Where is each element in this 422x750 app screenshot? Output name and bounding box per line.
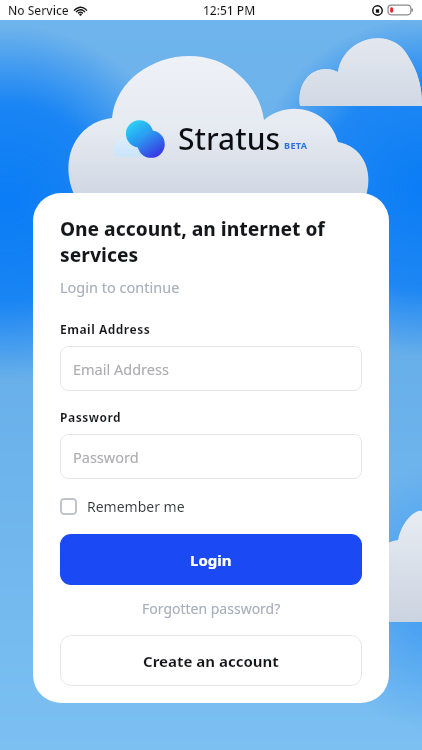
staticText: Password: [60, 409, 122, 425]
staticText: BETA: [284, 139, 308, 151]
staticText: One account, an internet of services: [60, 216, 362, 267]
button[interactable]: Password: [60, 434, 362, 479]
staticText: No Service: [8, 2, 69, 18]
staticText: Forgotten password?: [142, 599, 281, 618]
staticText: Email Address: [60, 321, 151, 337]
staticText: Email Address: [73, 359, 169, 379]
staticText: Password: [73, 447, 139, 467]
staticText: Remember me: [87, 497, 185, 516]
button[interactable]: Create an account: [60, 635, 362, 686]
staticText: Stratus: [178, 118, 281, 159]
staticText: Login to continue: [60, 277, 180, 297]
button[interactable]: Remember me: [60, 497, 185, 516]
staticText: Create an account: [143, 651, 279, 671]
staticText: 12:51 PM: [203, 2, 256, 18]
staticText: Login: [190, 550, 232, 570]
button[interactable]: Forgotten password?: [60, 599, 362, 618]
button[interactable]: Login: [60, 534, 362, 585]
button[interactable]: Email Address: [60, 346, 362, 391]
